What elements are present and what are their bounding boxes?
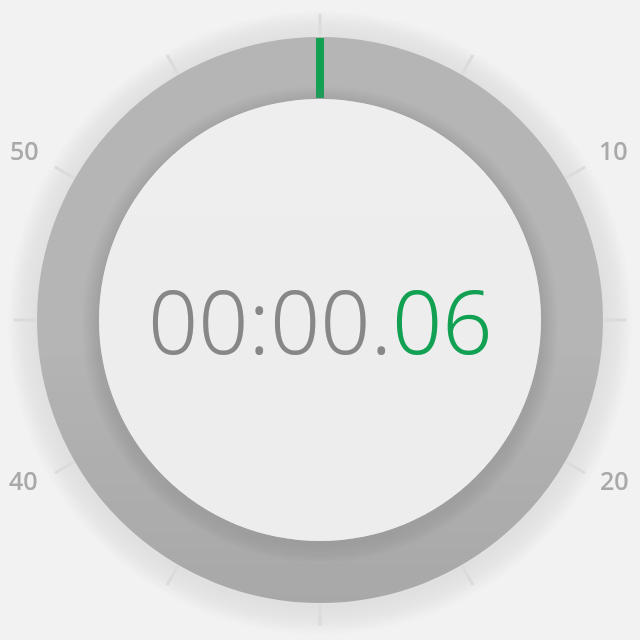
staticText: 10	[599, 133, 628, 167]
button[interactable]: Stopwatch dial — tap to start or stop	[0, 0, 640, 640]
staticText: 00:00.06	[148, 260, 493, 380]
staticText: 40	[9, 463, 38, 497]
staticText: 20	[600, 463, 629, 497]
staticText: 50	[10, 133, 39, 167]
